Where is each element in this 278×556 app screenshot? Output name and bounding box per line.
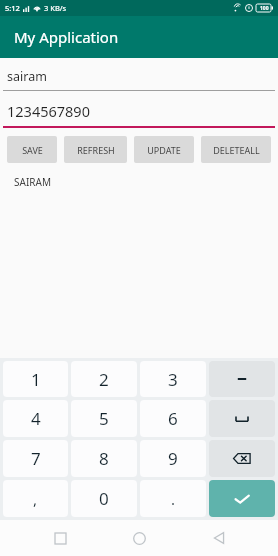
button[interactable]: DELETEALL bbox=[201, 136, 271, 163]
button[interactable]: Enter bbox=[209, 480, 275, 517]
staticText: SAVE bbox=[22, 144, 43, 156]
staticText: 1234567890 bbox=[7, 101, 90, 121]
button[interactable]: Backspace bbox=[209, 440, 275, 477]
staticText: REFRESH bbox=[77, 144, 115, 156]
staticText: 4 bbox=[31, 407, 41, 430]
button[interactable]: 8 bbox=[71, 440, 137, 477]
button[interactable]: 5 bbox=[71, 400, 137, 437]
staticText: 0 bbox=[99, 487, 109, 510]
button[interactable]: Back bbox=[199, 520, 239, 556]
button[interactable]: 1 bbox=[3, 361, 68, 397]
staticText: DELETEALL bbox=[213, 144, 260, 156]
button[interactable]: Recents bbox=[40, 520, 80, 556]
button[interactable]: Home bbox=[119, 520, 159, 556]
staticText: 100 bbox=[260, 5, 269, 12]
button[interactable]: Minus bbox=[209, 361, 275, 397]
staticText: 5 bbox=[99, 407, 109, 430]
staticText: 3 bbox=[168, 368, 178, 391]
staticText: . bbox=[171, 489, 176, 509]
staticText: sairam bbox=[7, 68, 47, 85]
button[interactable]: SAVE bbox=[7, 136, 57, 163]
button[interactable]: 7 bbox=[3, 440, 68, 477]
button[interactable]: 2 bbox=[71, 361, 137, 397]
button[interactable]: 1234567890 bbox=[0, 96, 278, 128]
button[interactable]: 0 bbox=[71, 480, 137, 517]
staticText: SAIRAM bbox=[14, 175, 51, 189]
button[interactable]: sairam bbox=[0, 62, 278, 91]
button[interactable]: 6 bbox=[140, 400, 206, 437]
button[interactable]: 4 bbox=[3, 400, 68, 437]
button[interactable]: . bbox=[140, 480, 206, 517]
staticText: 5:12 bbox=[5, 3, 20, 13]
staticText: My Application bbox=[14, 27, 119, 47]
button[interactable]: REFRESH bbox=[64, 136, 127, 163]
button[interactable]: 3 bbox=[140, 361, 206, 397]
staticText: 6 bbox=[168, 407, 178, 430]
staticText: 1 bbox=[31, 368, 41, 391]
button[interactable]: Space bbox=[209, 400, 275, 437]
button[interactable]: , bbox=[3, 480, 68, 517]
staticText: 8 bbox=[99, 447, 109, 470]
staticText: UPDATE bbox=[147, 144, 181, 156]
button[interactable]: 9 bbox=[140, 440, 206, 477]
staticText: 7 bbox=[31, 447, 41, 470]
staticText: 3 KB/s bbox=[44, 3, 67, 13]
button[interactable]: UPDATE bbox=[134, 136, 194, 163]
staticText: 2 bbox=[99, 368, 109, 391]
staticText: 9 bbox=[168, 447, 178, 470]
staticText: , bbox=[33, 489, 38, 509]
